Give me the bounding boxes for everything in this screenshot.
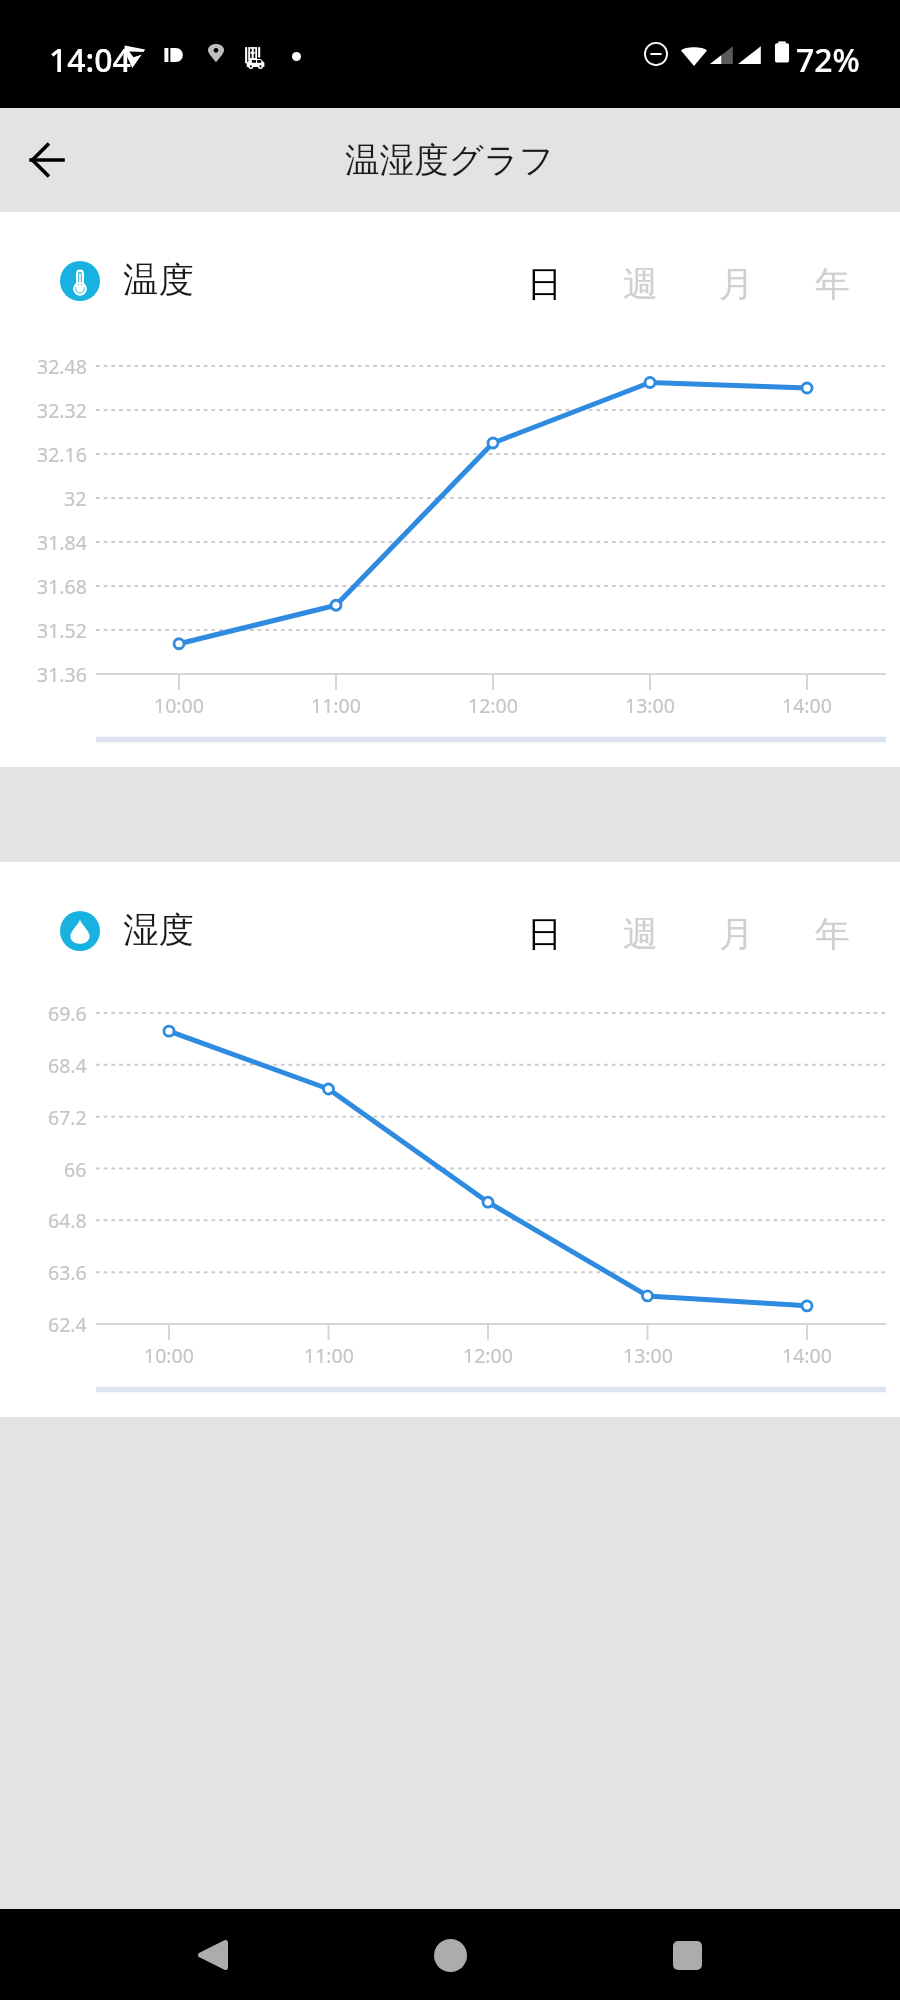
- staticText: 63.6: [48, 1259, 87, 1286]
- staticText: 64.8: [48, 1207, 87, 1234]
- button[interactable]: Back: [14, 127, 80, 193]
- staticText: 72%: [796, 38, 860, 82]
- button[interactable]: 日: [496, 899, 592, 969]
- staticText: 週: [623, 262, 658, 306]
- staticText: 14:04: [49, 38, 131, 82]
- button[interactable]: 週: [592, 899, 688, 969]
- button[interactable]: 月: [688, 899, 784, 969]
- staticText: 年: [815, 262, 850, 306]
- staticText: 13:00: [625, 692, 675, 719]
- staticText: 12:00: [468, 692, 518, 719]
- staticText: 日: [527, 262, 562, 306]
- staticText: 年: [815, 912, 850, 956]
- staticText: 月: [719, 262, 754, 306]
- staticText: 31.68: [37, 573, 87, 600]
- staticText: 32: [64, 485, 87, 512]
- staticText: 14:00: [782, 692, 832, 719]
- staticText: 32.16: [37, 441, 87, 468]
- button[interactable]: 日: [496, 249, 592, 319]
- staticText: 67.2: [48, 1104, 87, 1131]
- staticText: 温度: [123, 258, 194, 303]
- button[interactable]: Back: [178, 1920, 248, 1990]
- staticText: 10:00: [154, 692, 204, 719]
- staticText: 13:00: [623, 1342, 673, 1369]
- staticText: 69.6: [48, 1000, 87, 1027]
- button[interactable]: 月: [688, 249, 784, 319]
- staticText: 31.36: [37, 661, 87, 688]
- staticText: 66: [64, 1156, 87, 1183]
- staticText: 湿度: [123, 908, 194, 953]
- staticText: 31.52: [37, 617, 87, 644]
- staticText: 31.84: [37, 529, 87, 556]
- staticText: 週: [623, 912, 658, 956]
- staticText: 11:00: [304, 1342, 354, 1369]
- staticText: 10:00: [144, 1342, 194, 1369]
- staticText: 温湿度グラフ: [345, 139, 555, 182]
- button[interactable]: Recent apps: [652, 1920, 722, 1990]
- staticText: 62.4: [48, 1311, 87, 1338]
- staticText: 32.32: [37, 397, 87, 424]
- staticText: 月: [719, 912, 754, 956]
- button[interactable]: 週: [592, 249, 688, 319]
- staticText: 32.48: [37, 353, 87, 380]
- staticText: 12:00: [463, 1342, 513, 1369]
- button[interactable]: 年: [784, 899, 880, 969]
- staticText: 日: [527, 912, 562, 956]
- staticText: 14:00: [782, 1342, 832, 1369]
- staticText: 68.4: [48, 1052, 87, 1079]
- button[interactable]: Home: [415, 1920, 485, 1990]
- staticText: 11:00: [311, 692, 361, 719]
- button[interactable]: 年: [784, 249, 880, 319]
